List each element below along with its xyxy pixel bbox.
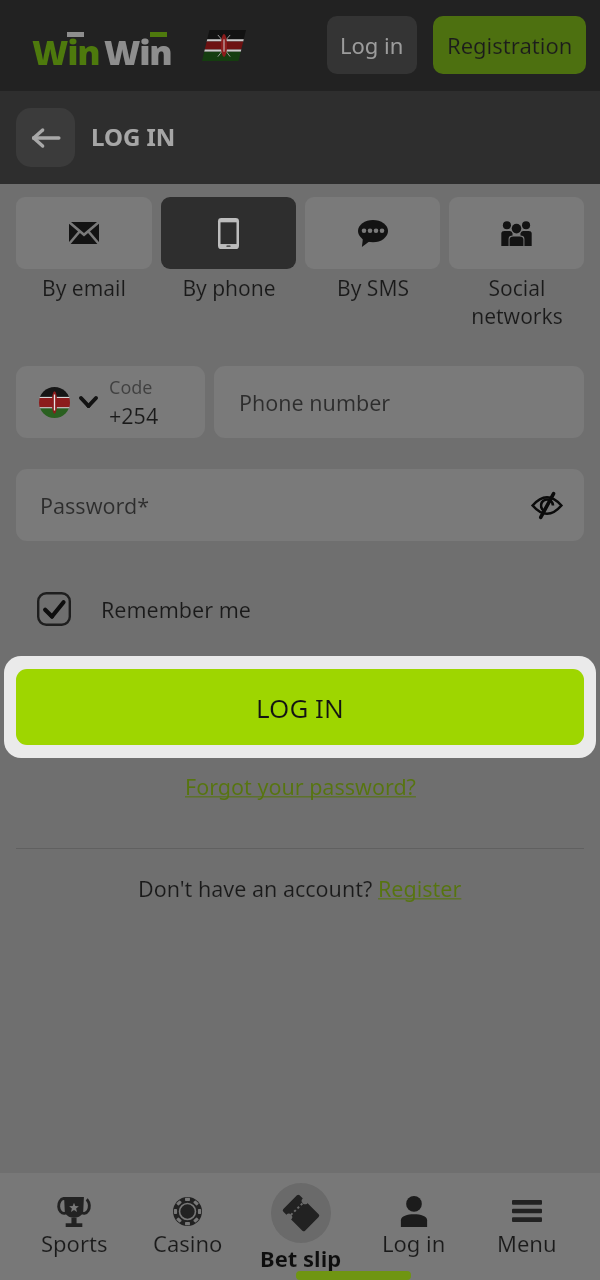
staticText: Code (109, 375, 153, 400)
button[interactable]: Log in (357, 1173, 470, 1280)
staticText: LOG IN (256, 690, 344, 725)
staticText: Phone number (239, 388, 391, 417)
staticText: Win (104, 29, 172, 65)
button[interactable]: Code (16, 366, 205, 438)
staticText: By email (42, 274, 126, 303)
staticText: Don't have an account? (138, 874, 378, 903)
staticText: Bet slip (260, 1243, 342, 1273)
button[interactable]: Log in (327, 16, 417, 74)
staticText: Win (32, 29, 100, 65)
button[interactable]: Menu (470, 1173, 583, 1280)
button[interactable]: Registration (433, 16, 586, 74)
staticText: Menu (497, 1228, 557, 1258)
button[interactable]: Register (378, 874, 462, 903)
button[interactable]: By email (16, 197, 152, 303)
staticText: Registration (447, 30, 573, 60)
button[interactable]: LOG IN (16, 669, 584, 745)
staticText: +254 (109, 401, 159, 430)
button[interactable]: Phone number (214, 366, 584, 438)
staticText: Password* (40, 491, 150, 520)
button[interactable]: Social networks (449, 197, 584, 330)
staticText: LOG IN (91, 120, 176, 153)
button[interactable]: Casino (131, 1173, 244, 1280)
button[interactable]: Password* (16, 469, 584, 541)
button[interactable]: Remember me (37, 592, 251, 626)
staticText: Remember me (101, 595, 251, 624)
staticText: By phone (182, 274, 276, 303)
button[interactable]: Forgot your password? (185, 772, 416, 801)
button[interactable]: By SMS (305, 197, 440, 303)
staticText: Log in (340, 30, 404, 60)
staticText: Social networks (471, 274, 563, 330)
staticText: Sports (41, 1228, 108, 1258)
button[interactable]: Back (16, 108, 75, 167)
staticText: Casino (153, 1228, 223, 1258)
button[interactable]: Sports (17, 1173, 131, 1280)
button[interactable]: Show password (523, 481, 571, 529)
staticText: By SMS (337, 274, 409, 303)
button[interactable]: Bet slip (244, 1173, 357, 1280)
staticText: Log in (382, 1228, 446, 1258)
button[interactable]: By phone (161, 197, 296, 303)
